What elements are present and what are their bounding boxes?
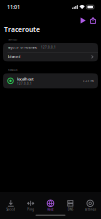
staticText: Speed <box>6 208 15 211</box>
staticText: Target IP or Hostname <box>7 46 37 49</box>
staticText: Traceroute <box>4 25 40 34</box>
staticText: localhost <box>17 76 34 82</box>
button[interactable]: Share <box>89 16 97 24</box>
staticText: Ping <box>27 208 34 211</box>
button[interactable]: Speed <box>2 199 20 212</box>
staticText: 127.0.0.1 <box>17 82 32 85</box>
button[interactable]: DNS <box>61 199 79 212</box>
staticText: RESULTS <box>8 68 17 72</box>
staticText: DNS <box>68 208 73 211</box>
staticText: 127.0.0.1 <box>41 46 56 49</box>
button[interactable]: Ping <box>22 199 40 212</box>
staticText: TARGET <box>8 38 17 41</box>
staticText: 11:01 <box>7 3 20 11</box>
button[interactable]: localhost <box>3 73 98 88</box>
button[interactable]: Target IP or Hostname <box>3 43 98 52</box>
staticText: Advanced <box>7 55 20 59</box>
button[interactable]: Advanced <box>3 52 98 61</box>
button[interactable]: Settings <box>81 199 99 212</box>
staticText: Settings <box>85 208 96 211</box>
button[interactable]: Start trace <box>79 16 87 24</box>
staticText: 0.23 ms <box>82 79 93 83</box>
staticText: Trace <box>47 208 54 211</box>
button[interactable]: Trace <box>41 199 59 212</box>
